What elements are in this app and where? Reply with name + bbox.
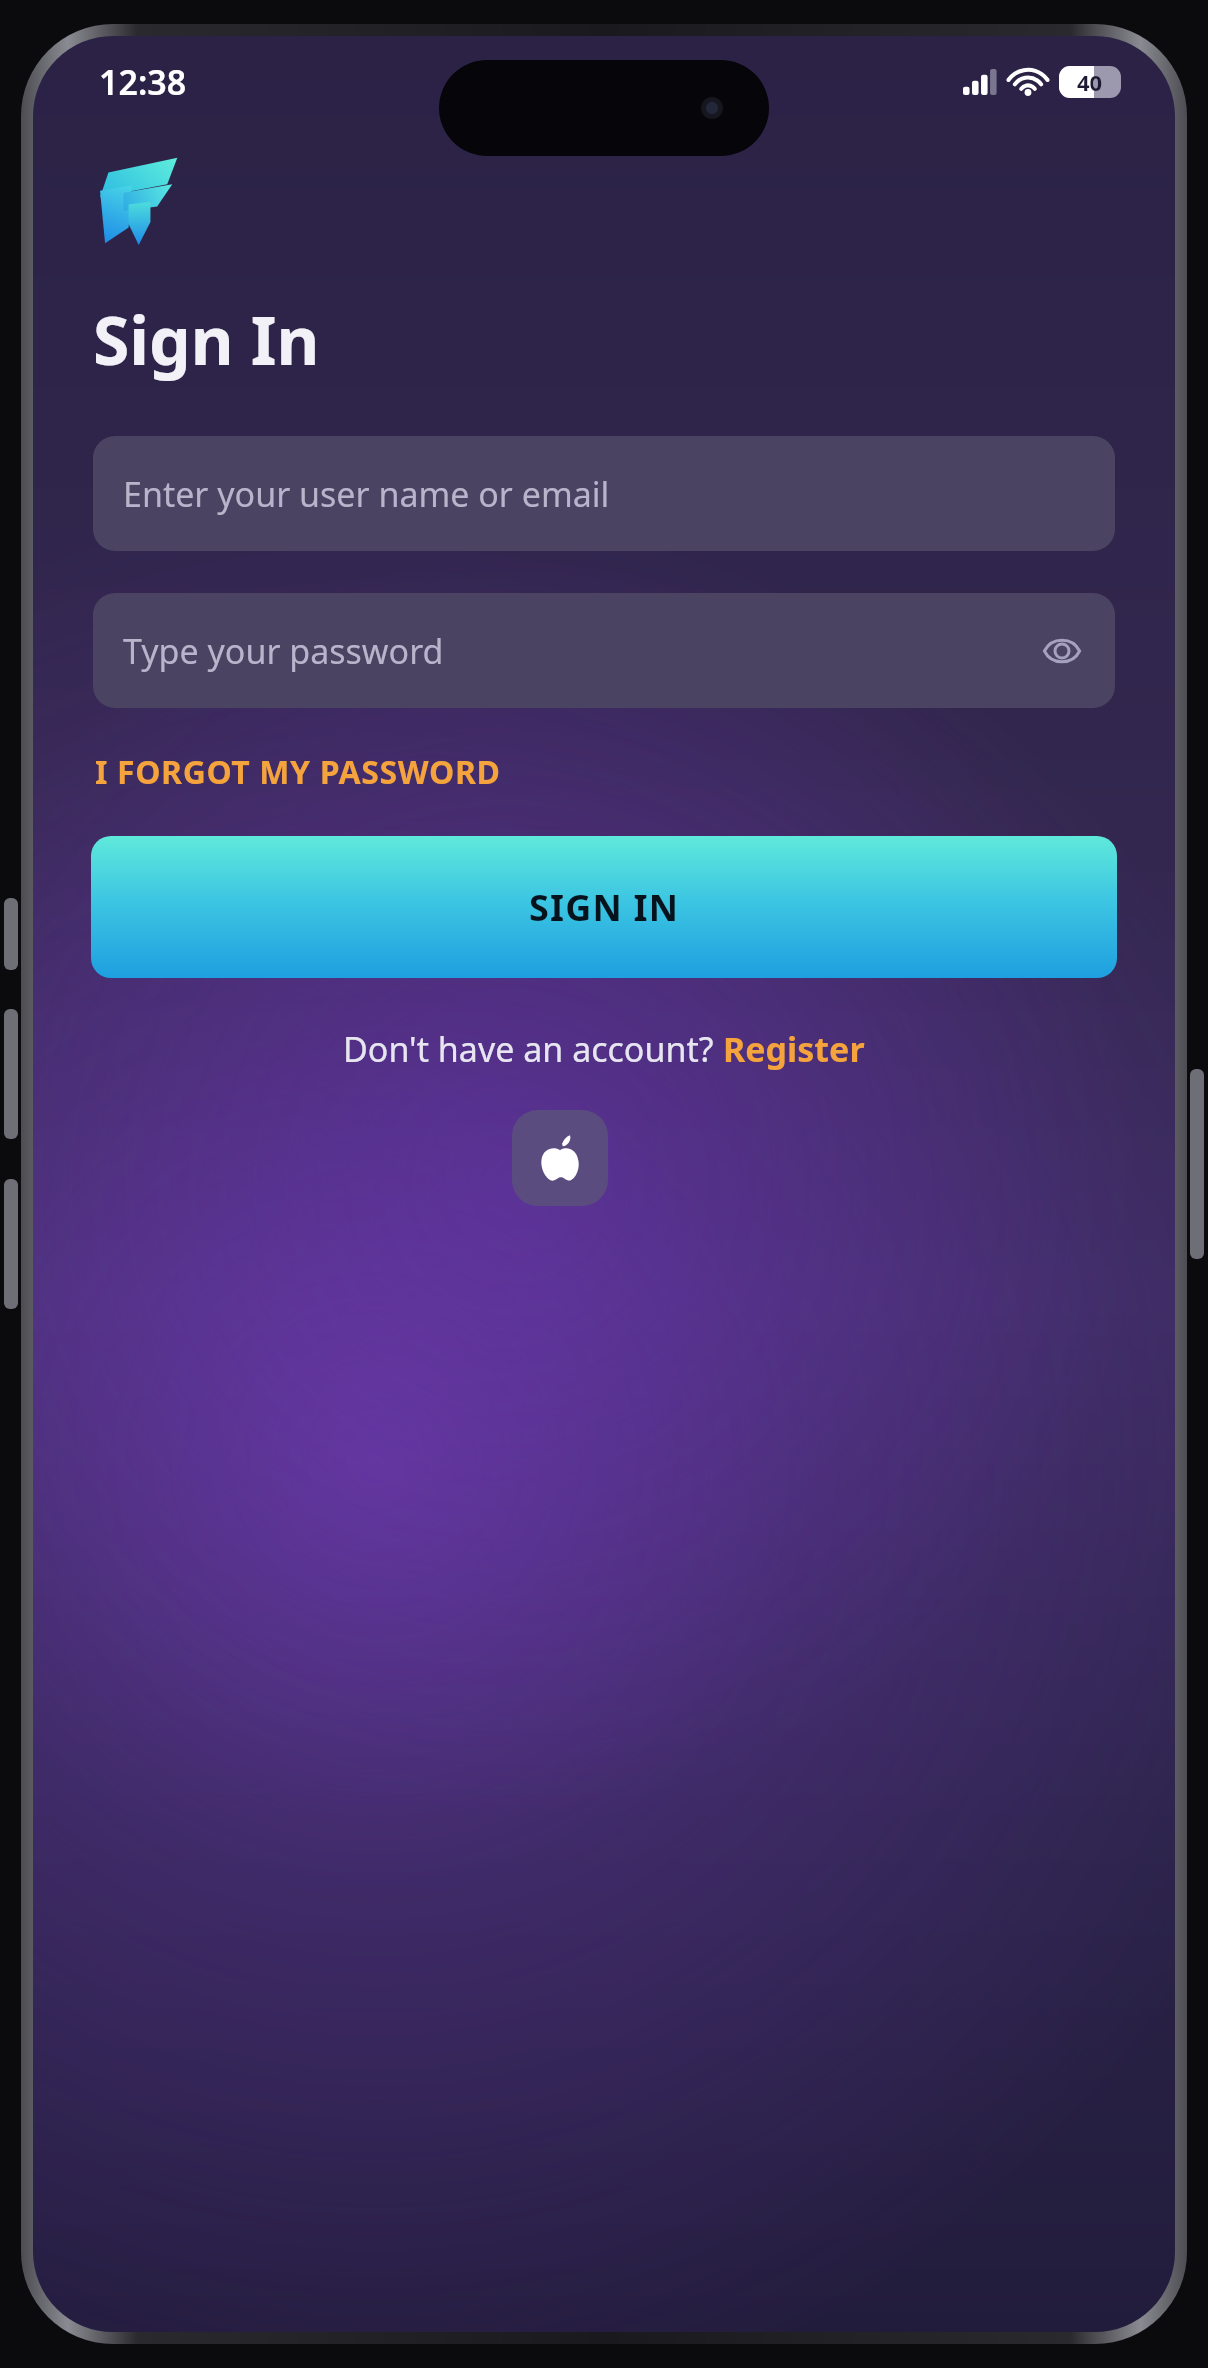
staticText: Type your password [123,628,444,674]
staticText: 40 [1077,67,1103,97]
button[interactable]: Type your password [93,593,1115,708]
button[interactable]: SIGN IN [91,836,1117,978]
staticText: Sign In [93,294,320,384]
staticText: Enter your user name or email [123,471,610,517]
staticText: I FORGOT MY PASSWORD [95,750,501,794]
staticText: SIGN IN [529,883,680,932]
staticText: 12:38 [99,59,187,105]
button[interactable]: I FORGOT MY PASSWORD [91,744,505,800]
button[interactable]: Register [723,1026,865,1072]
button[interactable]: Enter your user name or email [93,436,1115,551]
button[interactable]: Show password [1031,620,1093,682]
staticText: Register [723,1026,865,1072]
button[interactable]: Sign in with Apple [512,1110,608,1206]
staticText: Don't have an account? [343,1026,723,1072]
